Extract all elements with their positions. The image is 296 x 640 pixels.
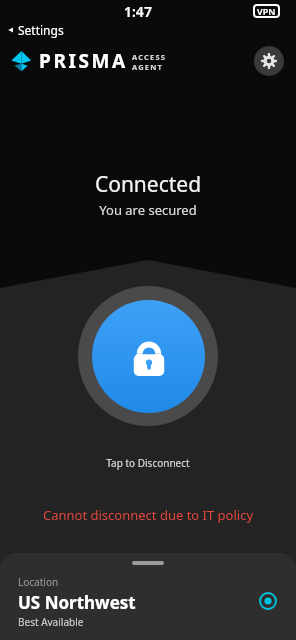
- button[interactable]: Settings: [254, 46, 284, 76]
- staticText: VPN: [257, 5, 276, 17]
- staticText: Connected: [0, 170, 296, 199]
- staticText: Location: [18, 575, 59, 589]
- staticText: Best Available: [18, 615, 84, 629]
- staticText: PRISMA: [39, 48, 128, 74]
- staticText: 1:47: [124, 2, 152, 21]
- button[interactable]: Location: [0, 553, 296, 640]
- staticText: Settings: [18, 22, 64, 38]
- button[interactable]: Settings: [7, 22, 64, 38]
- staticText: Cannot disconnect due to IT policy: [0, 506, 296, 524]
- staticText: You are secured: [0, 201, 296, 219]
- staticText: US Northwest: [18, 591, 136, 614]
- button[interactable]: Disconnect VPN: [78, 286, 218, 426]
- staticText: AGENT: [132, 62, 164, 72]
- button[interactable]: Selected location: [256, 589, 280, 613]
- staticText: Tap to Disconnect: [0, 456, 296, 470]
- staticText: ACCESS: [132, 52, 167, 62]
